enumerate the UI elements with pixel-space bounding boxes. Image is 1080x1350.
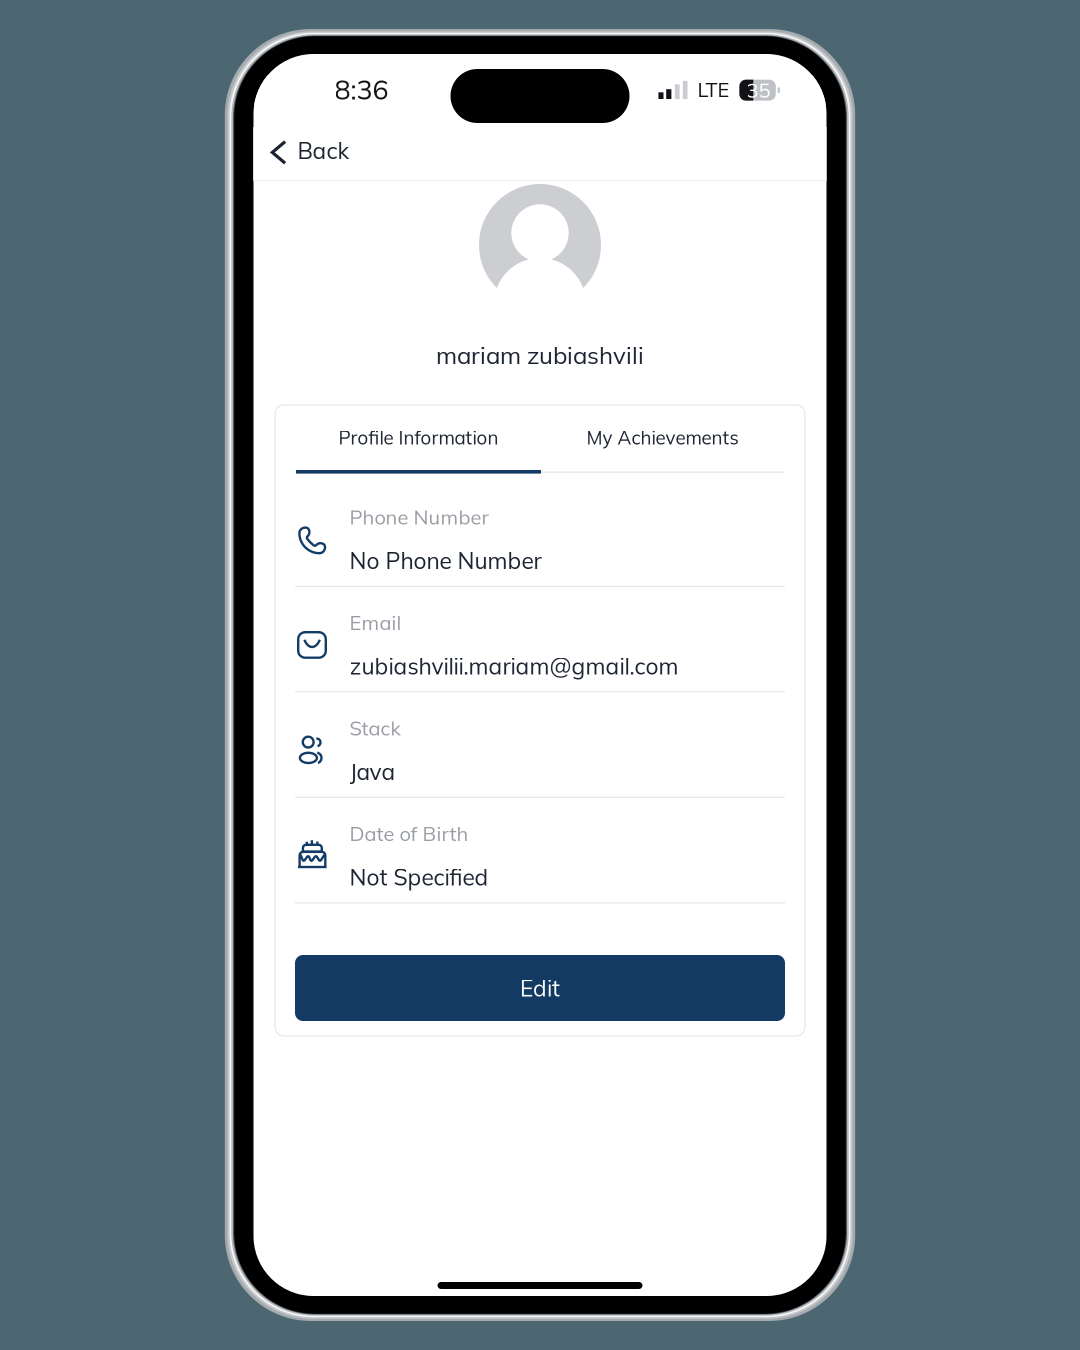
staticText: Email bbox=[349, 610, 401, 635]
button[interactable]: Back bbox=[253, 127, 368, 181]
staticText: Profile Information bbox=[338, 426, 498, 449]
staticText: zubiashvilii.mariam@gmail.com bbox=[349, 652, 678, 680]
staticText: mariam zubiashvili bbox=[436, 340, 644, 370]
button[interactable]: My Achievements bbox=[541, 405, 784, 470]
staticText: Phone Number bbox=[349, 504, 488, 530]
staticText: LTE bbox=[697, 77, 729, 102]
button[interactable]: Edit bbox=[295, 955, 785, 1021]
button[interactable]: Profile Information bbox=[296, 405, 541, 470]
staticText: Date of Birth bbox=[349, 821, 468, 846]
staticText: Not Specified bbox=[349, 863, 488, 891]
staticText: No Phone Number bbox=[349, 546, 541, 575]
staticText: Java bbox=[349, 757, 395, 786]
staticText: Back bbox=[297, 136, 349, 165]
staticText: 35 bbox=[746, 78, 770, 103]
staticText: Edit bbox=[520, 974, 560, 1002]
staticText: My Achievements bbox=[586, 426, 738, 449]
staticText: Stack bbox=[349, 715, 400, 741]
staticText: 8:36 bbox=[334, 73, 388, 106]
